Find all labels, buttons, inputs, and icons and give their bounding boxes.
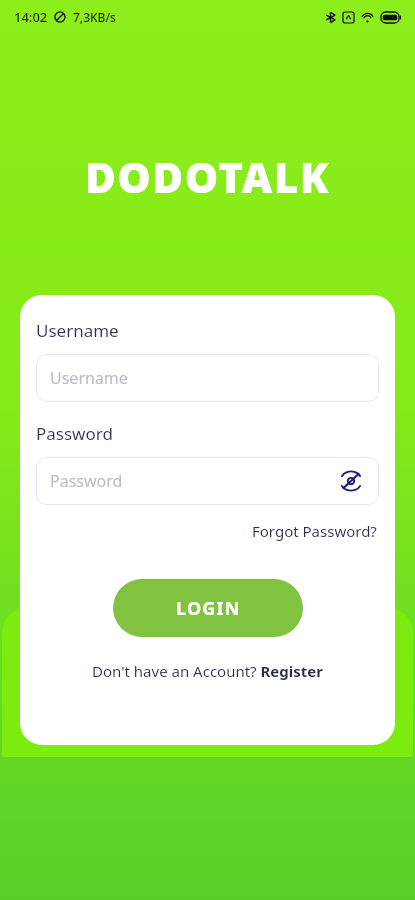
- button[interactable]: LOGIN: [113, 579, 303, 637]
- staticText: Don't have an Account? Register: [92, 661, 323, 681]
- staticText: Password: [50, 470, 123, 492]
- staticText: 14:02: [14, 8, 48, 26]
- staticText: Username: [50, 367, 128, 389]
- staticText: Password: [36, 422, 113, 445]
- staticText: Forgot Password?: [252, 521, 377, 541]
- button[interactable]: Toggle password visibility: [337, 467, 365, 495]
- button[interactable]: Forgot Password?: [250, 519, 379, 543]
- staticText: Username: [36, 319, 119, 342]
- button[interactable]: Don't have an Account? Register: [88, 659, 327, 683]
- staticText: LOGIN: [176, 596, 241, 621]
- button[interactable]: Username: [36, 354, 379, 402]
- button[interactable]: Password: [36, 457, 379, 505]
- staticText: DODOTALK: [85, 148, 331, 205]
- staticText: 7,3KB/s: [73, 9, 116, 25]
